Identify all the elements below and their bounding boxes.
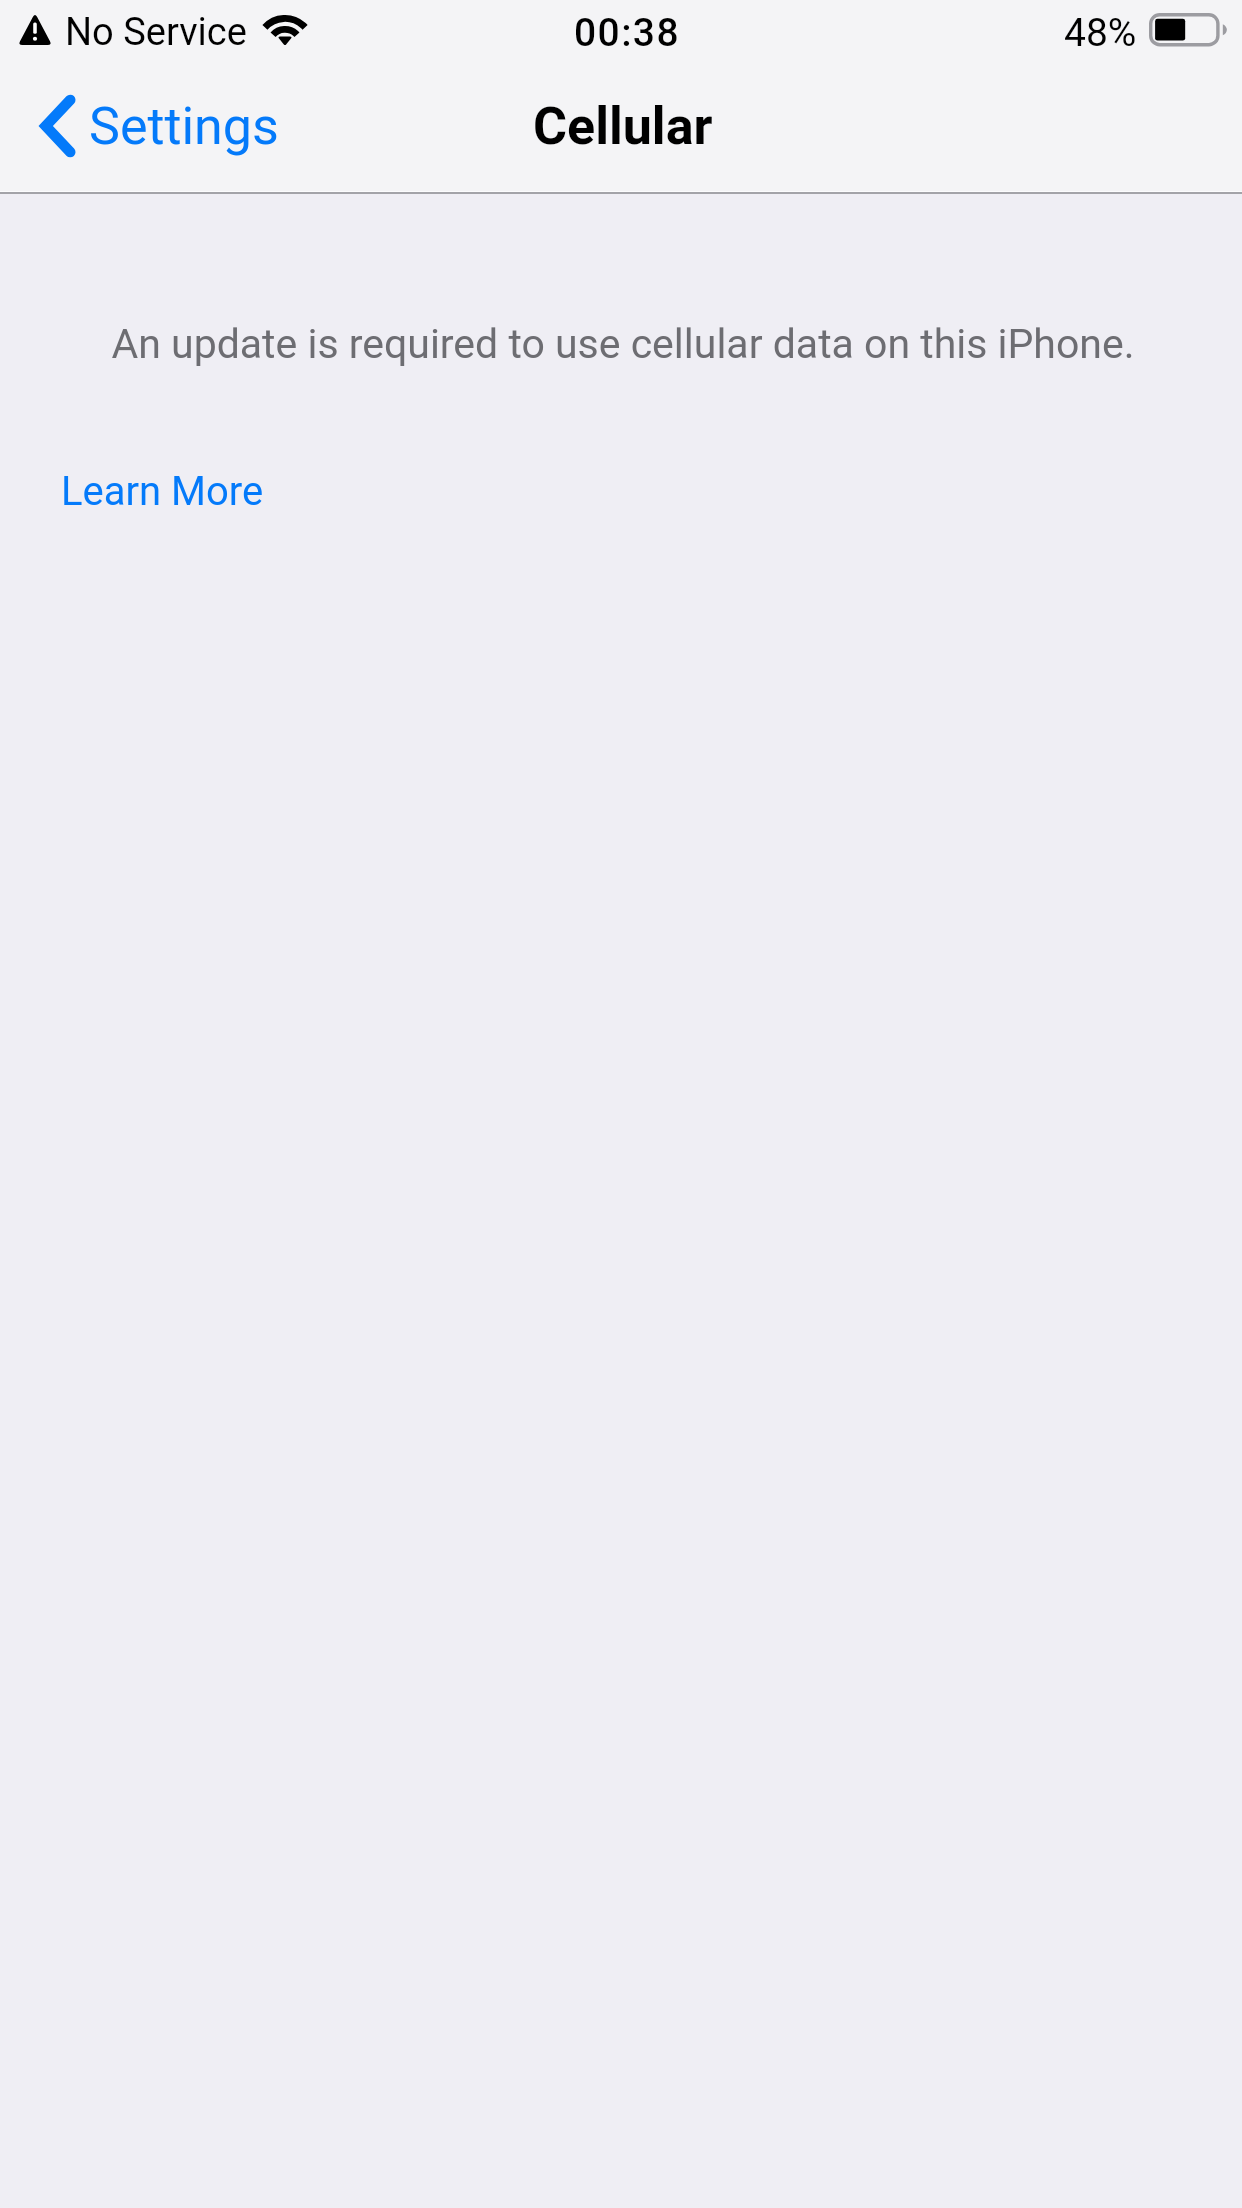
staticText: An update is required to use cellular da… — [2, 320, 1242, 368]
other: Battery 48 percent — [1149, 13, 1228, 47]
button[interactable]: Learn More — [49, 456, 276, 527]
button[interactable]: Back — [41, 61, 279, 191]
staticText: Learn More — [61, 468, 264, 515]
staticText: 00:38 — [6, 10, 1242, 56]
other: No service warning — [18, 13, 52, 45]
other: Wi-Fi — [264, 13, 306, 47]
staticText: No Service — [65, 10, 247, 55]
staticText: Cellular — [533, 96, 713, 157]
other: Back — [41, 95, 75, 157]
staticText: 48% — [1064, 10, 1137, 56]
staticText: Settings — [89, 96, 279, 157]
